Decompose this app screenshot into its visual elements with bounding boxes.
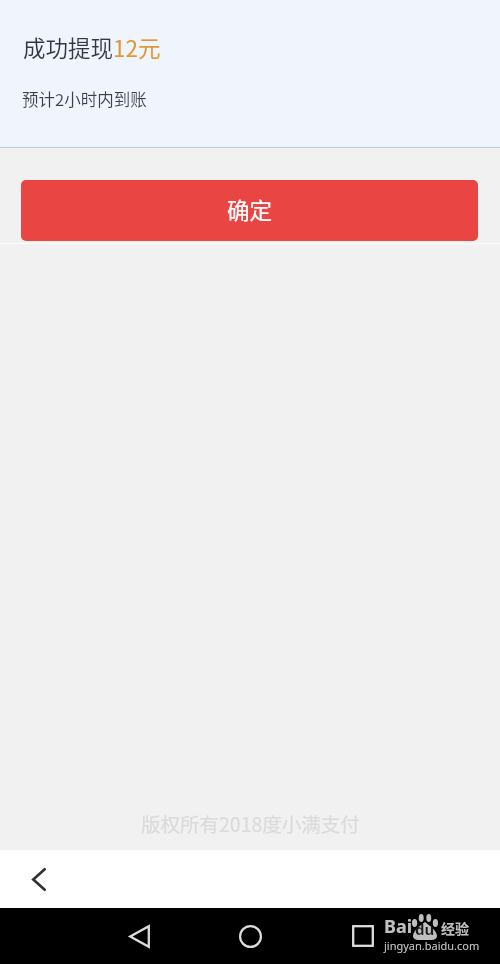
staticText: jingyan.baidu.com — [384, 938, 480, 953]
staticText: Bai — [384, 914, 413, 939]
staticText: 确定 — [227, 193, 273, 226]
button[interactable]: Back — [13, 853, 65, 905]
button[interactable]: Back — [119, 916, 159, 956]
staticText: 版权所有2018度小满支付 — [141, 809, 360, 837]
staticText: 预计2小时内到账 — [22, 87, 147, 111]
staticText: 成功提现12元 — [23, 31, 161, 64]
staticText: du — [415, 919, 435, 939]
button[interactable]: Recent apps — [343, 916, 383, 956]
staticText: 经验 — [441, 918, 469, 938]
button[interactable]: 确定 — [21, 180, 478, 241]
button[interactable]: Home — [230, 916, 270, 956]
